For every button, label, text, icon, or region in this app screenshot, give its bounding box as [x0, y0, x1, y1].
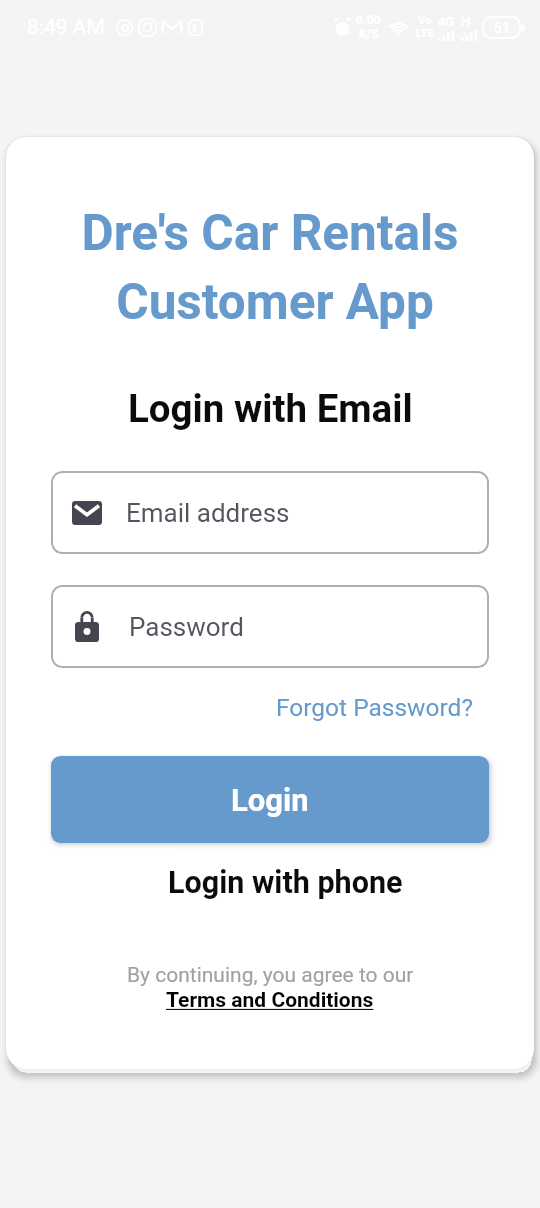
button[interactable]: Login	[51, 756, 489, 843]
staticText: Login with Email	[128, 386, 413, 431]
staticText: Password	[129, 612, 244, 642]
staticText: Vo	[418, 14, 432, 27]
staticText: LTE	[416, 27, 434, 40]
other: Password	[75, 611, 99, 642]
staticText: 51	[494, 20, 511, 36]
staticText: Login with phone	[168, 865, 403, 901]
staticText: Terms and Conditions	[166, 988, 374, 1013]
staticText: 8:49 AM	[27, 15, 105, 40]
button[interactable]: Email	[51, 471, 489, 554]
button[interactable]: Password	[51, 585, 489, 668]
button[interactable]: Login with phone	[148, 853, 423, 913]
staticText: 4G	[438, 14, 455, 29]
other: Email	[72, 501, 102, 525]
staticText: H	[461, 14, 471, 29]
staticText: Dre's Car Rentals	[81, 204, 459, 262]
staticText: Email address	[126, 498, 290, 528]
staticText: Customer App	[116, 273, 434, 331]
button[interactable]: Forgot Password?	[264, 683, 485, 732]
staticText: Forgot Password?	[276, 693, 473, 722]
staticText: K/S	[359, 27, 379, 41]
staticText: Login	[231, 782, 309, 818]
staticText: By continuing, you agree to our	[127, 963, 414, 988]
staticText: 0.00	[356, 13, 381, 27]
button[interactable]: Terms and Conditions	[152, 980, 388, 1021]
